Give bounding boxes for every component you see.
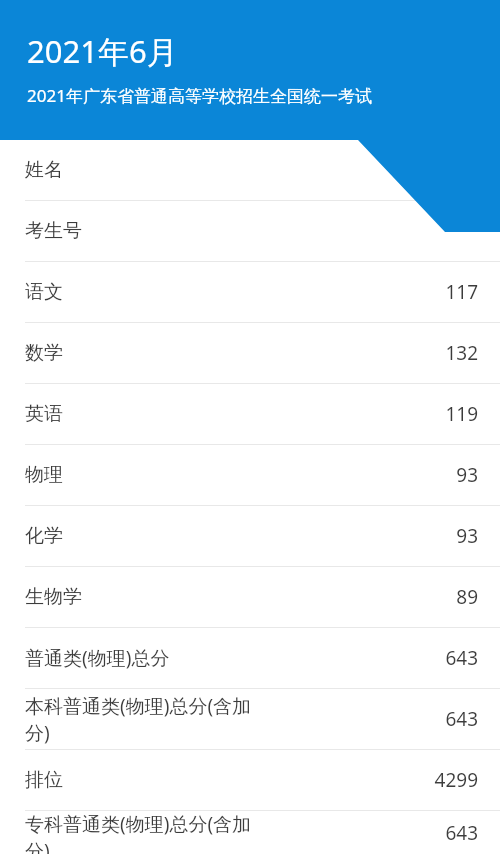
staticText: 物理 (25, 463, 63, 487)
button[interactable]: 普通类(物理)总分 (0, 628, 500, 689)
staticText: 93 (456, 462, 478, 488)
staticText: 132 (445, 340, 478, 366)
staticText: 专科普通类(物理)总分(含加分) (25, 811, 255, 854)
staticText: 4299 (434, 767, 478, 793)
button[interactable]: 排位 (0, 750, 500, 811)
button[interactable]: 数学 (0, 323, 500, 384)
button[interactable]: 物理 (0, 445, 500, 506)
button[interactable]: 本科普通类(物理)总分(含加分) (0, 689, 500, 750)
staticText: 643 (445, 820, 478, 846)
staticText: 117 (445, 279, 478, 305)
staticText: 化学 (25, 524, 63, 548)
button[interactable]: 语文 (0, 262, 500, 323)
staticText: 2021年广东省普通高等学校招生全国统一考试 (27, 84, 372, 107)
staticText: 643 (445, 706, 478, 732)
button[interactable]: 生物学 (0, 567, 500, 628)
staticText: 考生号 (25, 219, 82, 243)
staticText: 普通类(物理)总分 (25, 645, 170, 671)
staticText: 119 (445, 401, 478, 427)
staticText: 英语 (25, 402, 63, 426)
staticText: 语文 (25, 280, 63, 304)
staticText: 本科普通类(物理)总分(含加分) (25, 693, 255, 745)
staticText: 姓名 (25, 158, 63, 182)
button[interactable]: 英语 (0, 384, 500, 445)
button[interactable]: 化学 (0, 506, 500, 567)
button[interactable]: 考生号 (0, 201, 500, 262)
button[interactable]: 专科普通类(物理)总分(含加分) (0, 811, 500, 854)
button[interactable]: 姓名 (0, 140, 500, 201)
staticText: 2021年6月 (27, 30, 178, 72)
staticText: 生物学 (25, 585, 82, 609)
staticText: 93 (456, 523, 478, 549)
staticText: 排位 (25, 768, 63, 792)
staticText: 数学 (25, 341, 63, 365)
staticText: 89 (456, 584, 478, 610)
staticText: 643 (445, 645, 478, 671)
